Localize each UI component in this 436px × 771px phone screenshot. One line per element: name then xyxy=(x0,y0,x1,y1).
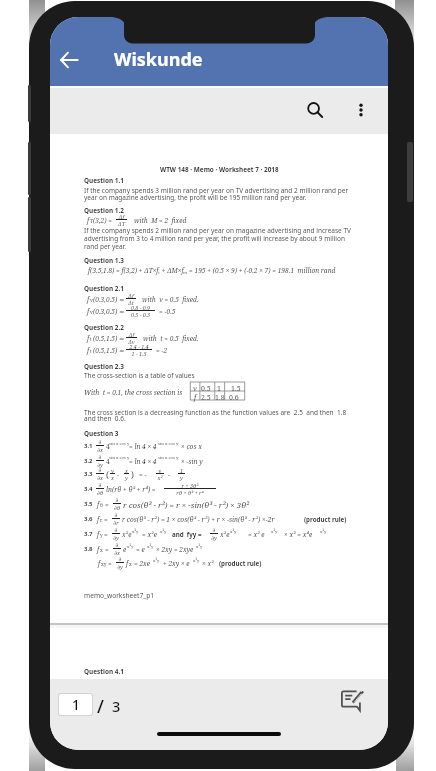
staticText: / xyxy=(97,694,104,719)
staticText: r xyxy=(100,517,103,524)
staticText: 3.5 xyxy=(84,500,93,508)
staticText: rand per year. xyxy=(84,242,126,251)
staticText: 1.5 xyxy=(231,384,241,394)
staticText: y xyxy=(110,467,115,474)
staticText: ∂ xyxy=(96,439,104,445)
staticText: with t = 0.5 fixed. xyxy=(143,334,199,343)
button[interactable]: 1 xyxy=(59,694,92,715)
button[interactable]: Back xyxy=(50,41,88,79)
staticText: 1.8 xyxy=(215,393,225,403)
staticText: f xyxy=(98,559,101,568)
staticText: sin x cos y xyxy=(158,441,179,447)
staticText: − xyxy=(117,470,120,479)
staticText: f xyxy=(97,530,100,539)
staticText: ∂ xyxy=(112,512,120,518)
staticText: 3.4 xyxy=(84,485,93,493)
staticText: f xyxy=(87,346,90,355)
staticText: t xyxy=(90,336,92,343)
staticText: Question 4.1 xyxy=(84,667,124,676)
staticText: ∂ xyxy=(113,497,121,503)
staticText: 3 xyxy=(112,696,121,716)
staticText: − xyxy=(168,470,171,479)
staticText: ∂y xyxy=(112,534,120,541)
staticText: ∂ xyxy=(96,467,104,473)
staticText: x xyxy=(100,547,103,554)
staticText: f xyxy=(194,393,197,403)
staticText: f(3.5,1.8) = f(3,2) + ΔT×fₜ + ΔM×fₘ = 19… xyxy=(88,266,336,275)
staticText: ∂ xyxy=(116,556,124,562)
staticText: Question 3 xyxy=(84,429,119,438)
staticText: and fyy = xyxy=(172,530,202,538)
staticText: 4 xyxy=(106,457,110,466)
staticText: v xyxy=(90,297,93,304)
staticText: 1 xyxy=(178,467,185,474)
button[interactable]: Review xyxy=(338,687,368,715)
staticText: = e xyxy=(136,545,145,554)
staticText: × cos x xyxy=(181,442,202,451)
staticText: r cos(θ³ − r²) = r × −sin(θ³ − r²) × 3θ² xyxy=(123,500,250,511)
staticText: ∂x xyxy=(96,474,104,481)
button[interactable]: Search xyxy=(295,90,335,130)
staticText: = ln 4 × 4 xyxy=(129,457,157,466)
staticText: with M = 2 fixed xyxy=(134,216,187,225)
staticText: memo_worksheet7_p1 xyxy=(84,591,154,600)
staticText: y xyxy=(100,532,103,539)
staticText: (3,2) = xyxy=(93,216,112,225)
staticText: ∂ xyxy=(113,542,121,548)
staticText: = xyxy=(104,515,108,524)
staticText: f xyxy=(126,559,129,568)
staticText: x²y xyxy=(271,529,278,535)
staticText: Question 2.3 xyxy=(84,362,124,371)
staticText: x²y xyxy=(193,558,200,564)
staticText: y xyxy=(156,467,164,474)
staticText: = ln 4 × 4 xyxy=(129,442,157,451)
staticText: r + 3θ² xyxy=(164,482,216,489)
staticText: ∂θ xyxy=(113,504,121,511)
staticText: Question 2.1 xyxy=(84,284,124,293)
staticText: f xyxy=(87,295,90,304)
staticText: x² xyxy=(156,474,164,481)
staticText: 3.1 xyxy=(84,442,93,450)
staticText: (0.3,0.5) ≈ xyxy=(93,295,125,304)
staticText: = xyxy=(104,530,108,539)
staticText: Δt xyxy=(126,299,136,306)
staticText: xy xyxy=(101,561,107,568)
button[interactable]: More options xyxy=(341,90,381,130)
staticText: 3.7 xyxy=(84,530,93,538)
staticText: T xyxy=(90,218,93,225)
staticText: (0.3,0.5) ≈ xyxy=(93,307,125,316)
staticText: 1 xyxy=(217,384,221,394)
staticText: x²y xyxy=(127,544,134,550)
staticText: v xyxy=(90,309,93,316)
staticText: f xyxy=(87,307,90,316)
staticText: (0.5,1.5) ≈ xyxy=(93,334,125,343)
staticText: ∂y xyxy=(116,563,124,570)
staticText: × −sin y xyxy=(181,457,203,466)
staticText: Δf xyxy=(116,213,127,220)
staticText: ( xyxy=(106,469,109,481)
staticText: 3.6 xyxy=(84,515,93,523)
staticText: f xyxy=(97,545,100,554)
staticText: × x² = x⁴e xyxy=(284,530,313,539)
staticText: WTW 148 · Memo · Worksheet 7 · 2018 xyxy=(160,165,279,174)
staticText: (product rule) xyxy=(304,515,347,523)
staticText: ∂ xyxy=(210,527,218,533)
staticText: 0.6 xyxy=(229,393,239,403)
staticText: x xyxy=(129,561,132,568)
staticText: ∂y xyxy=(96,461,104,468)
staticText: x xyxy=(110,474,115,481)
staticText: advertising from 3 to 4 million rand per… xyxy=(84,234,345,243)
staticText: x²y xyxy=(153,558,160,564)
staticText: ∂ xyxy=(96,454,104,460)
staticText: 0.5 xyxy=(201,384,211,394)
staticText: = 2xe xyxy=(134,559,150,568)
staticText: x²e xyxy=(122,530,132,539)
staticText: If the company spends 2 million rand per… xyxy=(84,226,351,235)
staticText: Question 1.3 xyxy=(84,256,124,265)
staticText: = x²e xyxy=(142,530,157,539)
staticText: rθ + θ³ + r⁴ xyxy=(164,489,216,496)
staticText: × 2xy = 2xye xyxy=(156,545,194,554)
staticText: 4 xyxy=(106,442,110,451)
staticText: x²y xyxy=(320,529,327,535)
staticText: = −0.5 xyxy=(159,307,176,316)
